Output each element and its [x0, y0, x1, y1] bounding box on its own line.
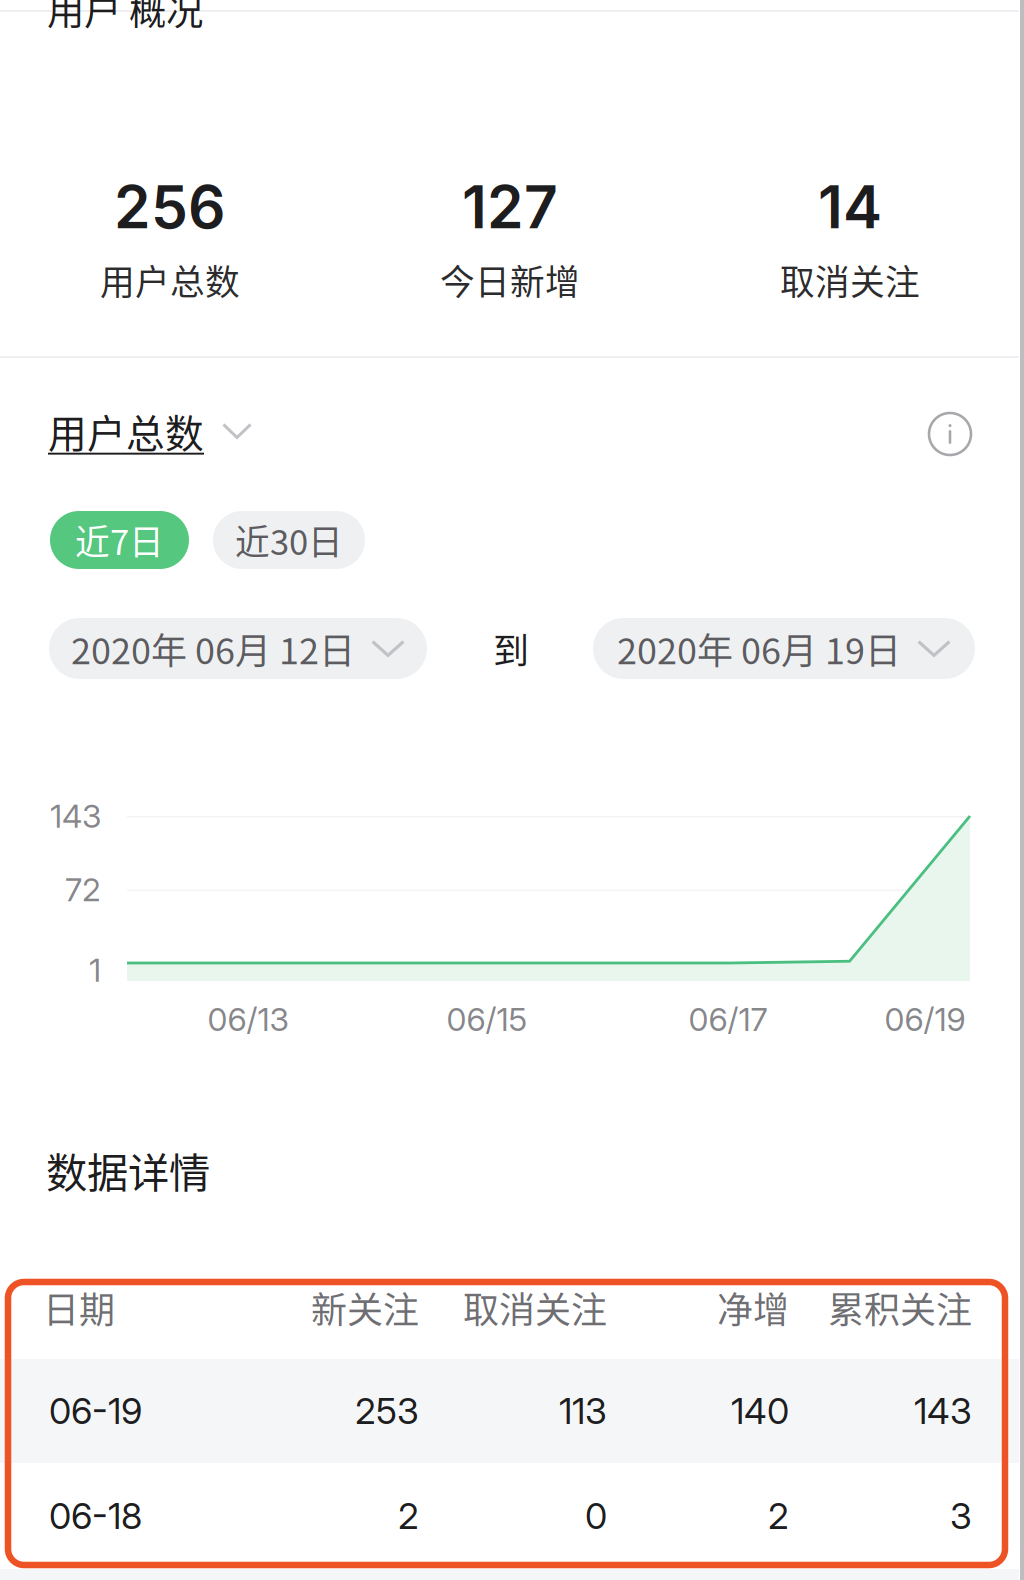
staticText: 日期: [43, 1281, 115, 1333]
staticText: 140: [731, 1389, 789, 1433]
staticText: 用户总数: [100, 255, 240, 305]
staticText: 2: [398, 1494, 419, 1538]
staticText: 取消关注: [780, 255, 920, 305]
staticText: 72: [65, 870, 101, 909]
staticText: 06/13: [207, 1000, 288, 1039]
staticText: 3: [950, 1494, 972, 1538]
staticText: 用户 概况: [47, 0, 203, 36]
staticText: 近7日: [75, 515, 164, 565]
staticText: 14: [818, 171, 882, 242]
staticText: 累积关注: [828, 1281, 972, 1333]
staticText: 2: [768, 1494, 789, 1538]
staticText: 取消关注: [463, 1281, 607, 1333]
button[interactable]: 2020年 06月 19日: [593, 618, 975, 679]
staticText: 06-18: [49, 1494, 142, 1538]
staticText: 143: [914, 1389, 972, 1433]
button[interactable]: 近7日: [50, 511, 189, 569]
staticText: 06-19: [49, 1389, 142, 1433]
staticText: 今日新增: [440, 255, 580, 305]
staticText: 到: [493, 622, 529, 674]
staticText: 253: [355, 1389, 419, 1433]
staticText: 净增: [717, 1281, 789, 1333]
button[interactable]: 用户总数: [48, 403, 252, 459]
staticText: 数据详情: [46, 1140, 210, 1200]
staticText: 新关注: [311, 1281, 419, 1333]
staticText: 127: [462, 171, 558, 242]
staticText: 近30日: [235, 515, 343, 565]
staticText: 06/15: [446, 1000, 527, 1039]
staticText: 113: [559, 1389, 607, 1433]
staticText: 0: [585, 1494, 607, 1538]
button[interactable]: 2020年 06月 12日: [49, 618, 427, 679]
button[interactable]: 指标说明: [929, 413, 971, 455]
staticText: 06/17: [688, 1000, 767, 1039]
button[interactable]: 近30日: [213, 511, 365, 569]
staticText: 2020年 06月 19日: [617, 622, 901, 674]
staticText: 2020年 06月 12日: [71, 622, 355, 674]
staticText: 256: [114, 171, 226, 242]
staticText: 1: [89, 951, 101, 989]
staticText: 用户总数: [48, 403, 204, 459]
staticText: 06/19: [884, 1000, 965, 1039]
staticText: 143: [50, 797, 101, 835]
